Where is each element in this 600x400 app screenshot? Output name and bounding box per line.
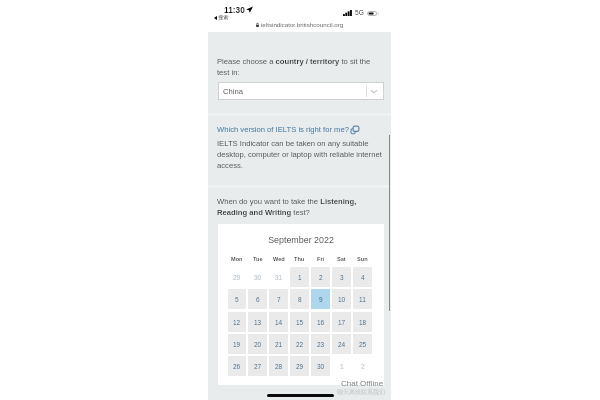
staticText: 2 — [361, 363, 365, 370]
staticText: 1 — [298, 274, 302, 281]
staticText: 30 — [317, 363, 325, 370]
button[interactable]: 31 — [269, 267, 288, 287]
staticText: Sat — [337, 256, 346, 262]
staticText: IELTS Indicator can be taken on any suit… — [217, 139, 387, 170]
button[interactable]: 19 — [228, 334, 246, 354]
button[interactable]: 12 — [228, 312, 246, 332]
button[interactable]: 14 — [269, 312, 288, 332]
button[interactable]: 8 — [290, 289, 309, 309]
button[interactable]: 25 — [353, 334, 372, 354]
button[interactable]: 5 — [228, 289, 246, 309]
staticText: Sun — [357, 256, 368, 262]
button[interactable]: 11 — [353, 289, 372, 309]
button[interactable]: China — [218, 82, 384, 100]
button[interactable]: 28 — [269, 356, 288, 376]
staticText: 搜索 — [218, 14, 229, 21]
staticText: 29 — [233, 274, 241, 281]
staticText: When do you want to take the Listening, … — [217, 197, 380, 217]
button[interactable]: 1 — [332, 356, 351, 376]
button[interactable]: 23 — [311, 334, 330, 354]
button[interactable]: 2 — [311, 267, 330, 287]
staticText: 31 — [275, 274, 283, 281]
staticText: September 2022 — [218, 235, 384, 245]
staticText: 24 — [338, 341, 346, 348]
button[interactable]: 15 — [290, 312, 309, 332]
button[interactable]: 3 — [332, 267, 351, 287]
staticText: 22 — [296, 341, 304, 348]
staticText: ieltsindicator.britishcouncil.org — [261, 21, 344, 28]
staticText: 5 — [235, 296, 239, 303]
staticText: 28 — [275, 363, 283, 370]
staticText: Fri — [317, 256, 325, 262]
staticText: China — [223, 87, 243, 96]
button[interactable]: 29 — [290, 356, 309, 376]
staticText: 23 — [317, 341, 325, 348]
staticText: 1 — [340, 363, 344, 370]
staticText: 5G — [355, 9, 364, 16]
button[interactable]: 2 — [353, 356, 372, 376]
staticText: 27 — [254, 363, 262, 370]
button[interactable]: 6 — [248, 289, 267, 309]
button[interactable]: 24 — [332, 334, 351, 354]
staticText: Which version of IELTS is right for me? — [217, 125, 349, 134]
staticText: 15 — [296, 319, 304, 326]
button[interactable]: 18 — [353, 312, 372, 332]
button[interactable]: 4 — [353, 267, 372, 287]
staticText: 25 — [359, 341, 367, 348]
staticText: 16 — [317, 319, 325, 326]
staticText: Wed — [273, 256, 285, 262]
button[interactable]: 30 — [248, 267, 267, 287]
staticText: 11:30 — [224, 5, 245, 14]
staticText: 29 — [296, 363, 304, 370]
staticText: 2 — [319, 274, 323, 281]
staticText: 10 — [338, 296, 346, 303]
button[interactable]: 1 — [290, 267, 309, 287]
staticText: 9 — [319, 296, 323, 303]
staticText: 8 — [298, 296, 302, 303]
staticText: Tue — [253, 256, 263, 262]
button[interactable]: Which version of IELTS is right for me? — [217, 125, 359, 134]
button[interactable]: 16 — [311, 312, 330, 332]
staticText: 18 — [359, 319, 367, 326]
staticText: 3 — [340, 274, 344, 281]
button[interactable]: 17 — [332, 312, 351, 332]
button[interactable]: 9 — [311, 289, 330, 309]
staticText: 21 — [275, 341, 283, 348]
staticText: 19 — [233, 341, 241, 348]
button[interactable]: 27 — [248, 356, 267, 376]
staticText: 7 — [277, 296, 281, 303]
staticText: 26 — [233, 363, 241, 370]
staticText: Mon — [231, 256, 243, 262]
staticText: Please choose a country / territory to s… — [217, 57, 377, 77]
button[interactable]: 10 — [332, 289, 351, 309]
staticText: 30 — [254, 274, 262, 281]
button[interactable]: 22 — [290, 334, 309, 354]
staticText: 6 — [256, 296, 260, 303]
staticText: 14 — [275, 319, 283, 326]
staticText: Chat Offline — [341, 379, 384, 388]
staticText: 4 — [361, 274, 365, 281]
button[interactable]: 26 — [228, 356, 246, 376]
button[interactable]: 30 — [311, 356, 330, 376]
button[interactable]: 29 — [228, 267, 246, 287]
button[interactable]: 13 — [248, 312, 267, 332]
staticText: 聊天离线联系我们 — [337, 388, 385, 396]
staticText: Thu — [294, 256, 305, 262]
staticText: 13 — [254, 319, 262, 326]
staticText: 12 — [233, 319, 241, 326]
staticText: 17 — [338, 319, 346, 326]
button[interactable]: Chat Offline — [341, 379, 384, 388]
button[interactable]: 20 — [248, 334, 267, 354]
staticText: 11 — [359, 296, 366, 303]
staticText: 20 — [254, 341, 262, 348]
button[interactable]: 7 — [269, 289, 288, 309]
button[interactable]: 21 — [269, 334, 288, 354]
